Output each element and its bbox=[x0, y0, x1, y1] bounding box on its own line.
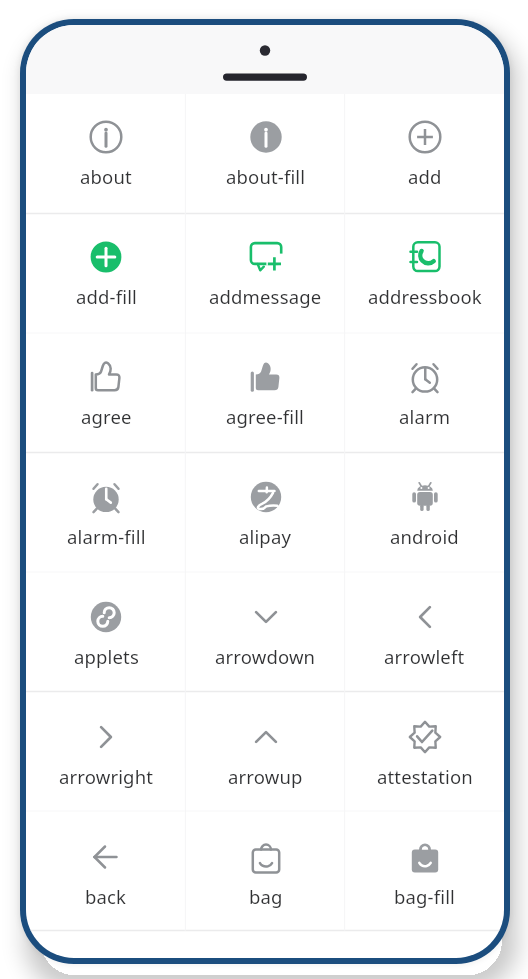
button[interactable]: applets bbox=[26, 574, 186, 694]
button[interactable]: arrowleft bbox=[345, 574, 504, 694]
button[interactable]: add bbox=[345, 94, 504, 214]
button[interactable]: bag-fill bbox=[345, 814, 504, 934]
staticText: back bbox=[85, 884, 127, 909]
button[interactable]: addressbook bbox=[345, 214, 504, 334]
button[interactable]: attestation bbox=[345, 694, 504, 814]
staticText: android bbox=[390, 524, 459, 549]
button[interactable]: arrowup bbox=[186, 694, 345, 814]
staticText: add bbox=[408, 164, 442, 189]
staticText: addmessage bbox=[209, 284, 322, 309]
staticText: alarm bbox=[399, 404, 451, 429]
button[interactable]: android bbox=[345, 454, 504, 574]
staticText: arrowup bbox=[228, 764, 303, 789]
staticText: add-fill bbox=[76, 284, 137, 309]
staticText: alipay bbox=[239, 524, 292, 549]
staticText: addressbook bbox=[368, 284, 482, 309]
staticText: alarm-fill bbox=[67, 524, 146, 549]
button[interactable]: alipay bbox=[186, 454, 345, 574]
staticText: arrowright bbox=[59, 764, 154, 789]
staticText: about bbox=[80, 164, 132, 189]
staticText: arrowleft bbox=[384, 644, 465, 669]
button[interactable]: add-fill bbox=[26, 214, 186, 334]
staticText: attestation bbox=[377, 764, 473, 789]
button[interactable]: addmessage bbox=[186, 214, 345, 334]
button[interactable]: agree-fill bbox=[186, 334, 345, 454]
staticText: about-fill bbox=[226, 164, 306, 189]
button[interactable]: about-fill bbox=[186, 94, 345, 214]
button[interactable]: alarm bbox=[345, 334, 504, 454]
button[interactable]: bag bbox=[186, 814, 345, 934]
button[interactable]: about bbox=[26, 94, 186, 214]
button[interactable]: agree bbox=[26, 334, 186, 454]
staticText: bag bbox=[249, 884, 283, 909]
staticText: agree-fill bbox=[226, 404, 305, 429]
button[interactable]: arrowright bbox=[26, 694, 186, 814]
button[interactable]: back bbox=[26, 814, 186, 934]
staticText: applets bbox=[74, 644, 139, 669]
staticText: agree bbox=[81, 404, 132, 429]
staticText: bag-fill bbox=[394, 884, 455, 909]
staticText: arrowdown bbox=[215, 644, 316, 669]
button[interactable]: arrowdown bbox=[186, 574, 345, 694]
button[interactable]: alarm-fill bbox=[26, 454, 186, 574]
